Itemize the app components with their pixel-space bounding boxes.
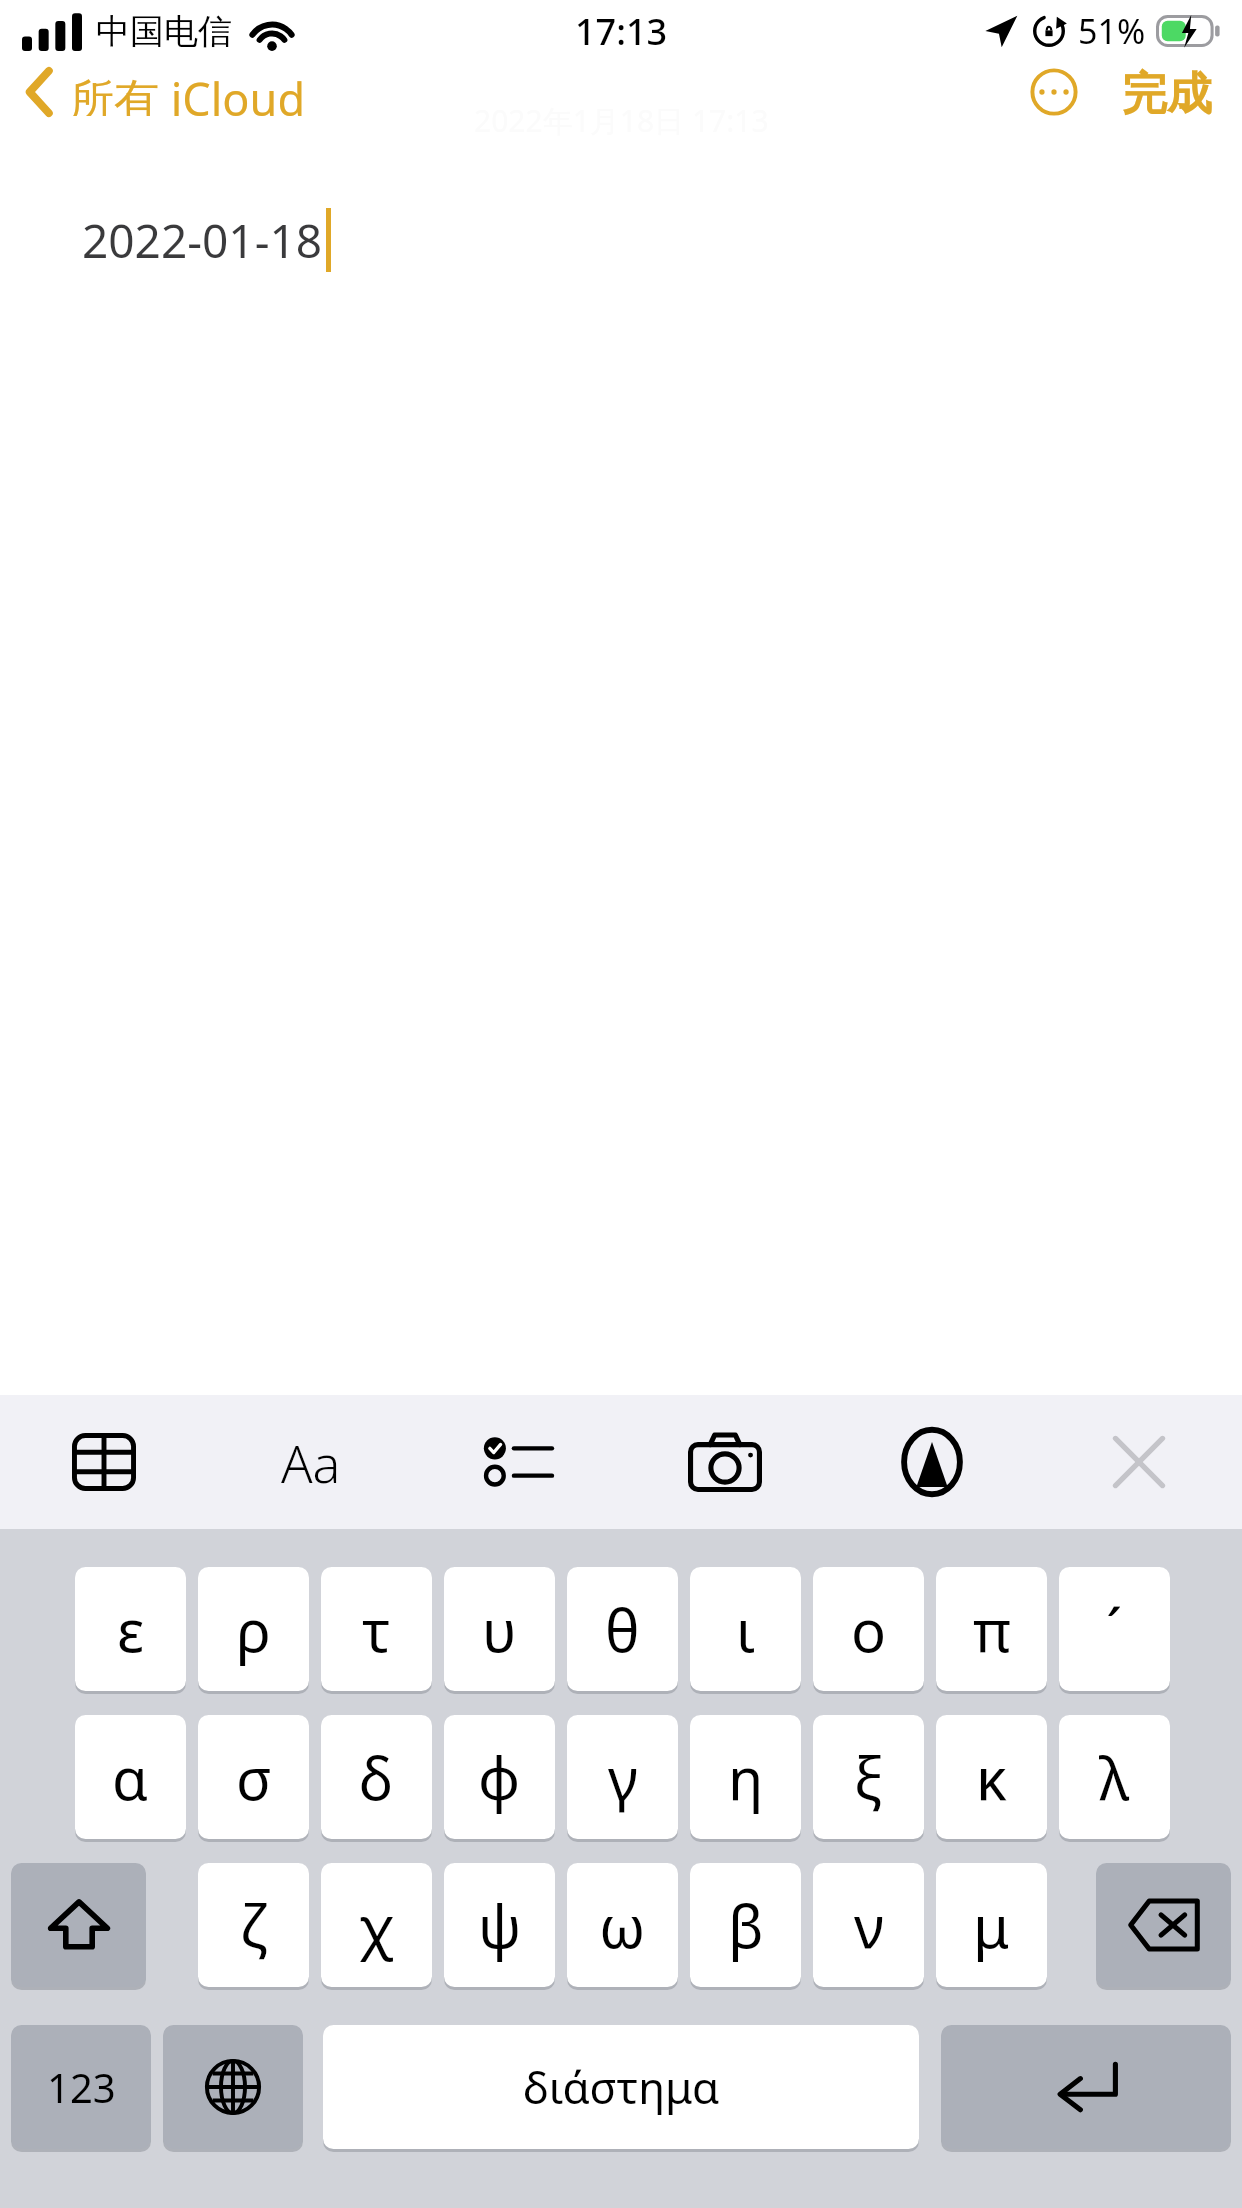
button[interactable]: χ xyxy=(321,1863,432,1987)
button[interactable]: Camera xyxy=(621,1395,828,1529)
button[interactable]: ω xyxy=(567,1863,678,1987)
button[interactable]: φ xyxy=(444,1715,555,1839)
staticText: ξ xyxy=(854,1738,883,1817)
button[interactable]: Table xyxy=(0,1395,207,1529)
button[interactable]: θ xyxy=(567,1567,678,1691)
staticText: 所有 iCloud xyxy=(69,68,306,116)
button[interactable]: α xyxy=(75,1715,186,1839)
button[interactable]: σ xyxy=(198,1715,309,1839)
staticText: π xyxy=(973,1590,1011,1669)
staticText: 中国电信 xyxy=(96,10,232,53)
staticText: χ xyxy=(359,1886,394,1965)
button[interactable]: ρ xyxy=(198,1567,309,1691)
button[interactable]: Shift xyxy=(11,1863,146,1987)
staticText: α xyxy=(112,1738,149,1817)
staticText: 2022-01-18 xyxy=(82,209,323,272)
button[interactable]: ο xyxy=(813,1567,924,1691)
staticText: λ xyxy=(1099,1738,1130,1817)
staticText: δ xyxy=(359,1738,394,1817)
staticText: σ xyxy=(236,1738,272,1817)
button[interactable]: ψ xyxy=(444,1863,555,1987)
button[interactable]: Checklist xyxy=(414,1395,621,1529)
button[interactable]: Close xyxy=(1035,1395,1242,1529)
button[interactable]: τ xyxy=(321,1567,432,1691)
button[interactable]: ξ xyxy=(813,1715,924,1839)
staticText: Aa xyxy=(281,1427,341,1498)
staticText: υ xyxy=(482,1590,517,1669)
staticText: ζ xyxy=(240,1886,267,1965)
button[interactable]: Numbers xyxy=(11,2025,151,2149)
staticText: ν xyxy=(854,1886,884,1965)
button[interactable]: More options xyxy=(1018,60,1090,124)
button[interactable]: Backspace xyxy=(1096,1863,1231,1987)
staticText: γ xyxy=(608,1738,638,1817)
staticText: διάστημα xyxy=(523,2057,720,2117)
staticText: ε xyxy=(117,1590,145,1669)
button[interactable]: Text format xyxy=(207,1395,414,1529)
staticText: ο xyxy=(851,1590,887,1669)
button[interactable]: λ xyxy=(1059,1715,1170,1839)
staticText: 17:13 xyxy=(575,7,668,56)
staticText: ρ xyxy=(236,1590,271,1669)
button[interactable]: ε xyxy=(75,1567,186,1691)
staticText: τ xyxy=(362,1590,391,1669)
button[interactable]: ι xyxy=(690,1567,801,1691)
staticText: ´ xyxy=(1106,1590,1123,1669)
staticText: μ xyxy=(973,1886,1010,1965)
staticText: θ xyxy=(605,1590,640,1669)
button[interactable]: β xyxy=(690,1863,801,1987)
staticText: φ xyxy=(478,1738,521,1817)
staticText: 完成 xyxy=(1122,66,1212,118)
staticText: 51% xyxy=(1078,8,1146,54)
button[interactable]: η xyxy=(690,1715,801,1839)
button[interactable]: Return xyxy=(941,2025,1231,2149)
staticText: ω xyxy=(599,1886,646,1965)
button[interactable]: υ xyxy=(444,1567,555,1691)
button[interactable]: μ xyxy=(936,1863,1047,1987)
button[interactable]: Next keyboard xyxy=(163,2025,303,2149)
button[interactable]: ζ xyxy=(198,1863,309,1987)
button[interactable]: 完成 xyxy=(1116,60,1218,124)
button[interactable]: π xyxy=(936,1567,1047,1691)
staticText: 123 xyxy=(47,2060,116,2114)
button[interactable]: ´ xyxy=(1059,1567,1170,1691)
staticText: η xyxy=(728,1738,764,1817)
staticText: κ xyxy=(976,1738,1007,1817)
button[interactable]: 所有 iCloud xyxy=(0,60,324,124)
button[interactable]: κ xyxy=(936,1715,1047,1839)
staticText: ι xyxy=(736,1590,756,1669)
staticText: β xyxy=(728,1886,764,1965)
button[interactable]: διάστημα xyxy=(323,2025,919,2149)
button[interactable]: δ xyxy=(321,1715,432,1839)
button[interactable]: γ xyxy=(567,1715,678,1839)
staticText: ψ xyxy=(478,1886,522,1965)
button[interactable]: ν xyxy=(813,1863,924,1987)
button[interactable]: Markup xyxy=(828,1395,1035,1529)
